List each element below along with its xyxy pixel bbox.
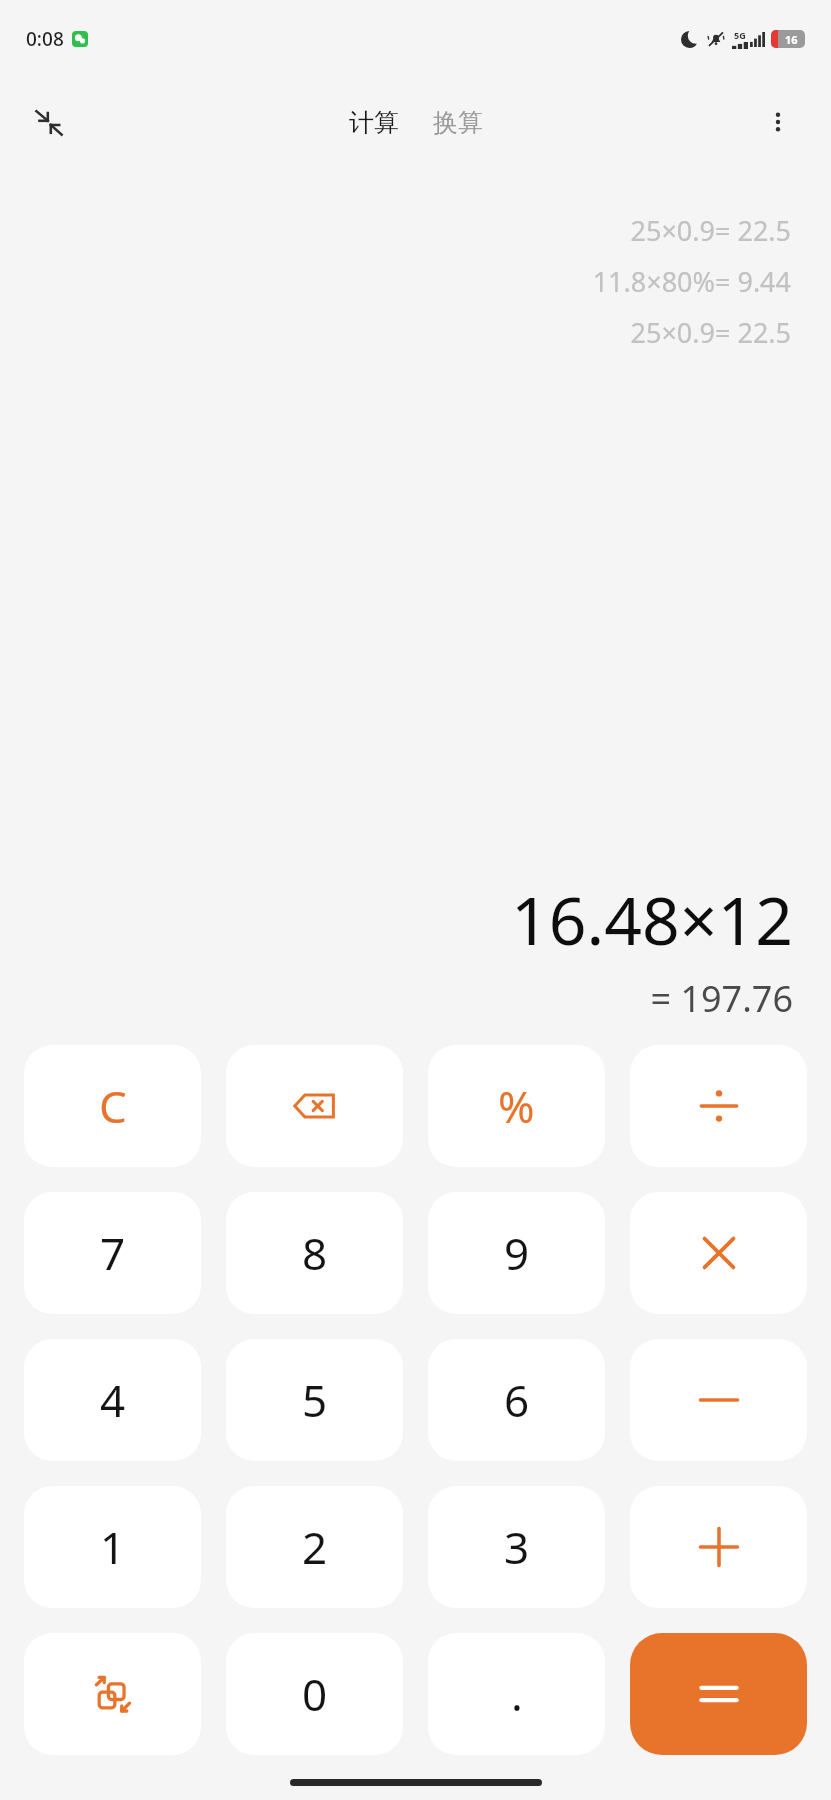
button[interactable]: 4	[24, 1339, 201, 1461]
button[interactable]: Unit conversion	[24, 1633, 201, 1755]
staticText: 8	[302, 1223, 328, 1283]
button[interactable]: 1	[24, 1486, 201, 1608]
staticText: 1	[100, 1517, 126, 1577]
button[interactable]: Equals	[630, 1633, 807, 1755]
staticText: .	[511, 1664, 523, 1724]
staticText: 0:08	[26, 26, 64, 52]
staticText: 16.48×12	[511, 874, 793, 964]
button[interactable]: Minus	[630, 1339, 807, 1461]
button[interactable]: 7	[24, 1192, 201, 1314]
button[interactable]: 计算	[339, 101, 409, 144]
staticText: 16	[785, 32, 798, 47]
button[interactable]: Collapse	[22, 95, 76, 149]
button[interactable]: Plus	[630, 1486, 807, 1608]
staticText: 计算	[349, 107, 399, 138]
staticText: 5G	[734, 29, 746, 41]
button[interactable]: 9	[428, 1192, 605, 1314]
button[interactable]: .	[428, 1633, 605, 1755]
button[interactable]: %	[428, 1045, 605, 1167]
button[interactable]: Multiply	[630, 1192, 807, 1314]
staticText: %	[498, 1076, 535, 1136]
button[interactable]: Divide	[630, 1045, 807, 1167]
staticText: 换算	[433, 107, 483, 138]
button[interactable]: 2	[226, 1486, 403, 1608]
staticText: 3	[504, 1517, 530, 1577]
button[interactable]: More options	[751, 95, 805, 149]
staticText: C	[99, 1076, 127, 1136]
button[interactable]: 25×0.9= 22.5	[630, 314, 791, 351]
button[interactable]: 25×0.9= 22.5	[630, 212, 791, 249]
button[interactable]: 8	[226, 1192, 403, 1314]
button[interactable]: 11.8×80%= 9.44	[592, 263, 791, 300]
button[interactable]: 6	[428, 1339, 605, 1461]
staticText: = 197.76	[650, 974, 793, 1023]
button[interactable]: 5	[226, 1339, 403, 1461]
staticText: 4	[100, 1370, 126, 1430]
staticText: 7	[100, 1223, 126, 1283]
button[interactable]: Backspace	[226, 1045, 403, 1167]
button[interactable]: 3	[428, 1486, 605, 1608]
staticText: 0	[302, 1664, 328, 1724]
button[interactable]: 换算	[423, 101, 493, 144]
button[interactable]: C	[24, 1045, 201, 1167]
staticText: 5	[302, 1370, 328, 1430]
button[interactable]: 0	[226, 1633, 403, 1755]
staticText: 2	[302, 1517, 328, 1577]
staticText: 6	[504, 1370, 530, 1430]
staticText: 9	[504, 1223, 530, 1283]
